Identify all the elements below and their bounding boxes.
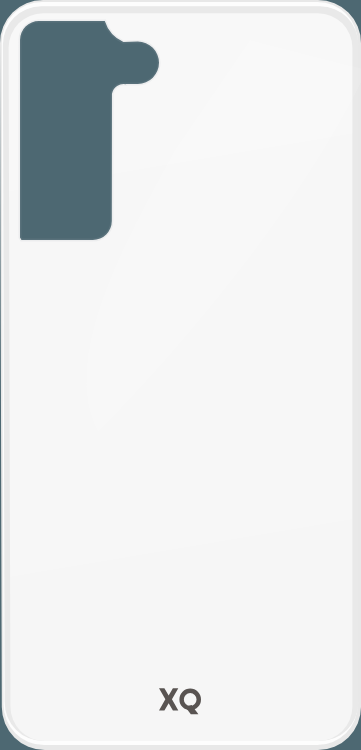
button[interactable]: Transparent phone case, back view: [0, 0, 361, 750]
